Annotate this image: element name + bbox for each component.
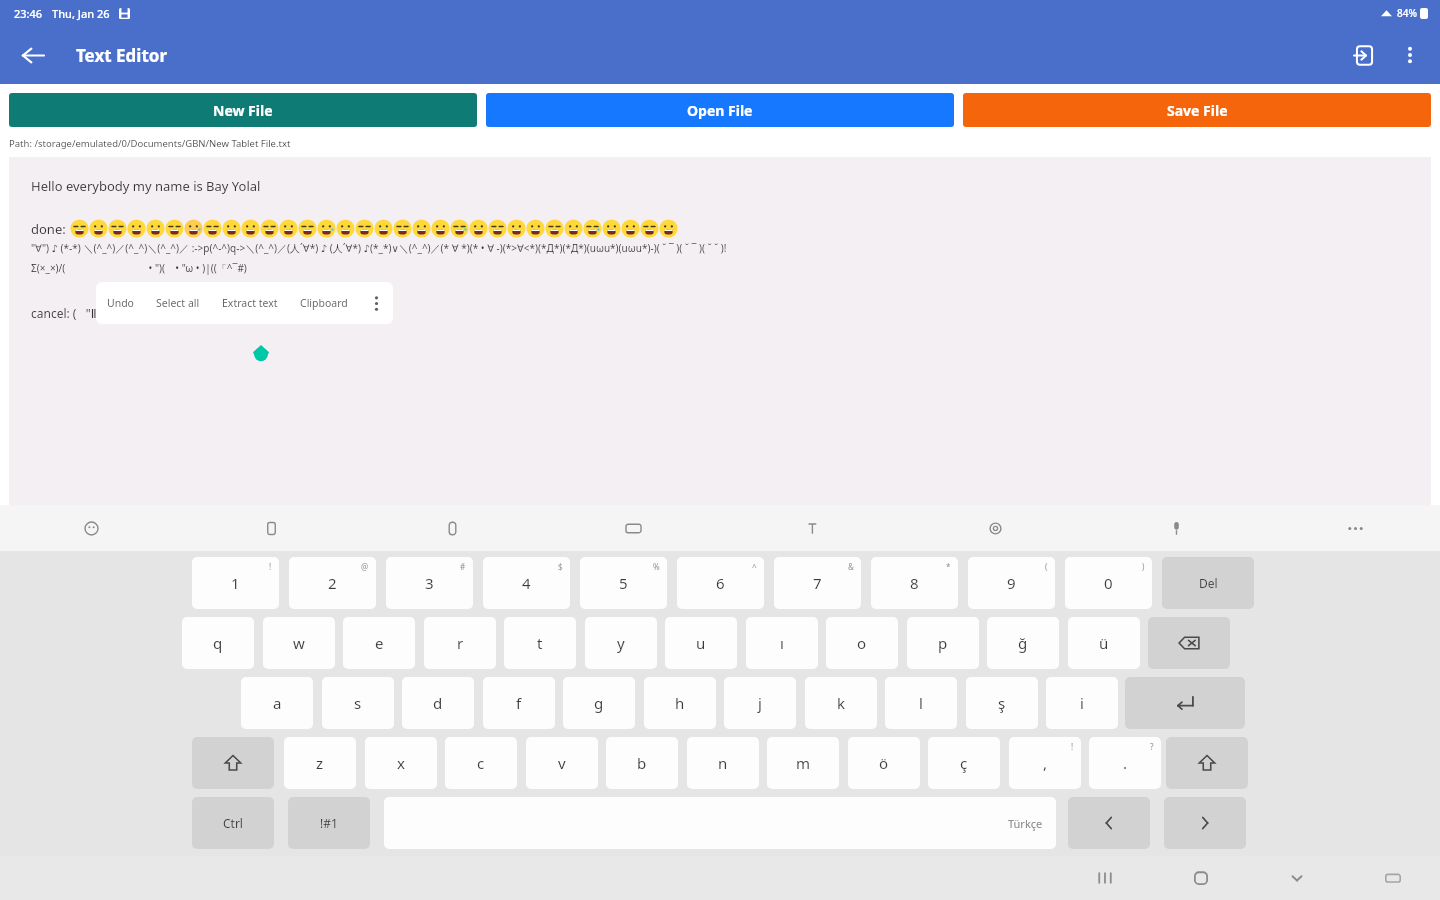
button[interactable]: u [665,617,737,669]
button[interactable]: ş [966,677,1038,729]
button[interactable]: Open File [486,93,954,127]
button[interactable]: n [687,737,759,789]
button[interactable]: Home [1182,859,1220,897]
button[interactable]: z [284,737,356,789]
button[interactable]: v [526,737,598,789]
button[interactable]: 5 [580,557,667,609]
button[interactable]: . [1089,737,1161,789]
button[interactable]: More [359,282,393,324]
button[interactable]: Toolbar 3 [615,510,651,546]
button[interactable]: ö [848,737,920,789]
button[interactable]: More options [1388,33,1432,77]
staticText: $ [558,561,563,572]
staticText: 1 [231,573,240,593]
staticText: 3 [425,573,434,593]
button[interactable]: w [263,617,335,669]
button[interactable]: o [826,617,898,669]
button[interactable]: ğ [987,617,1059,669]
button[interactable]: f [483,677,555,729]
button[interactable]: 4 [483,557,570,609]
staticText: !#1 [320,815,338,831]
button[interactable]: Toolbar 1 [253,510,289,546]
staticText: w [293,633,305,653]
staticText: z [316,753,324,773]
button[interactable]: Clipboard [289,282,359,324]
button[interactable]: Toolbar 2 [434,510,470,546]
button[interactable]: New File [9,93,477,127]
staticText: % [653,561,660,572]
button[interactable]: Select all [145,282,211,324]
button[interactable]: c [445,737,517,789]
button[interactable]: Hide keyboard [1278,859,1316,897]
staticText: 0 [1104,573,1113,593]
button[interactable]: k [805,677,877,729]
staticText: 7 [813,573,822,593]
button[interactable]: 0 [1065,557,1152,609]
button[interactable]: t [504,617,576,669]
button[interactable]: y [585,617,657,669]
button[interactable]: a [241,677,313,729]
staticText: ü [1099,633,1109,653]
staticText: n [718,753,728,773]
button[interactable]: l [885,677,957,729]
button[interactable]: ı [746,617,818,669]
staticText: ( [1045,561,1048,572]
button[interactable]: Toolbar 6 [1158,510,1194,546]
button[interactable]: left [1068,797,1150,849]
staticText: p [938,633,948,653]
button[interactable]: m [767,737,839,789]
button[interactable]: Undo [96,282,145,324]
staticText: ) [1142,561,1145,572]
button[interactable]: Extract text [211,282,289,324]
button[interactable]: g [563,677,635,729]
button[interactable]: h [644,677,716,729]
staticText: k [837,693,846,713]
button[interactable]: shift [192,737,274,789]
staticText: . [1123,753,1128,773]
button[interactable]: p [907,617,979,669]
button[interactable]: shift [1166,737,1248,789]
staticText: * [946,561,951,572]
button[interactable]: q [182,617,254,669]
button[interactable]: b [606,737,678,789]
button[interactable]: Toolbar 5 [977,510,1013,546]
button[interactable]: Save File [963,93,1431,127]
button[interactable]: 9 [968,557,1055,609]
staticText: Text Editor [76,44,168,67]
staticText: i [1080,693,1084,713]
button[interactable]: Toolbar 0 [73,510,109,546]
button[interactable]: ç [928,737,1000,789]
button[interactable]: 3 [386,557,473,609]
button[interactable]: Recent apps [1086,859,1124,897]
staticText: cancel: ( "Ⅲ")( • _ > • )*) [31,305,162,321]
button[interactable]: space [384,797,1056,849]
button[interactable]: s [322,677,394,729]
button[interactable]: ü [1068,617,1140,669]
button[interactable]: d [402,677,474,729]
button[interactable]: 1 [192,557,279,609]
staticText: , [1043,753,1048,773]
button[interactable]: enter [1125,677,1245,729]
staticText: ç [960,753,968,773]
button[interactable]: i [1046,677,1118,729]
button[interactable]: right [1164,797,1246,849]
button[interactable]: !#1 [288,797,370,849]
button[interactable]: Ctrl [192,797,274,849]
button[interactable]: 2 [289,557,376,609]
staticText: Hello everybody my name is Bay Yolal [31,177,261,195]
button[interactable]: j [724,677,796,729]
button[interactable]: x [365,737,437,789]
button[interactable]: bksp [1148,617,1230,669]
button[interactable]: , [1009,737,1081,789]
button[interactable]: Del [1162,557,1254,609]
button[interactable]: e [343,617,415,669]
button[interactable]: More toolbar [1337,510,1373,546]
button[interactable]: 7 [774,557,861,609]
button[interactable]: 8 [871,557,958,609]
button[interactable]: Change keyboard [1374,859,1412,897]
button[interactable]: Toolbar 4 [796,510,832,546]
button[interactable]: Open external [1340,31,1388,79]
button[interactable]: 6 [677,557,764,609]
button[interactable]: r [424,617,496,669]
button[interactable]: Back [8,31,56,79]
